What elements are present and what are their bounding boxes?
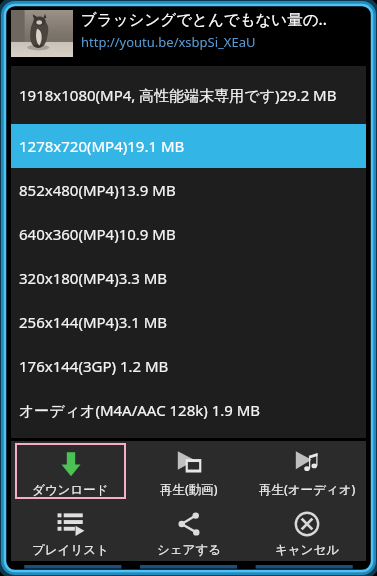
staticText: 640x360(MP4)10.9 MB [19, 224, 176, 244]
button[interactable]: 640x360(MP4)10.9 MB [11, 212, 366, 256]
button[interactable]: キャンセル [252, 503, 362, 559]
staticText: 256x144(MP4)3.1 MB [19, 312, 168, 332]
staticText: 1918x1080(MP4, 高性能端末専用です)29.2 MB [19, 85, 337, 105]
button[interactable]: 再生(オーディオ) [252, 443, 362, 499]
button[interactable]: 再生(動画) [134, 443, 244, 499]
button[interactable]: 320x180(MP4)3.3 MB [11, 256, 366, 300]
staticText: キャンセル [275, 542, 339, 558]
staticText: 176x144(3GP) 1.2 MB [19, 356, 169, 376]
staticText: ブラッシングでとんでもない量の.. [81, 8, 327, 29]
staticText: 再生(動画) [160, 481, 218, 498]
button[interactable]: 256x144(MP4)3.1 MB [11, 300, 366, 344]
staticText: 1278x720(MP4)19.1 MB [19, 136, 185, 156]
staticText: シェアする [157, 542, 221, 558]
button[interactable]: 852x480(MP4)13.9 MB [11, 168, 366, 212]
button[interactable]: オーディオ(M4A/AAC 128k) 1.9 MB [11, 388, 366, 432]
button[interactable]: プレイリスト [15, 503, 126, 559]
other: 再生(オーディオ) [293, 449, 321, 477]
button[interactable]: 1918x1080(MP4, 高性能端末専用です)29.2 MB [11, 66, 366, 124]
other: シェアする [175, 510, 203, 538]
staticText: 852x480(MP4)13.9 MB [19, 180, 176, 200]
other: 再生(動画) [175, 449, 203, 477]
other: プレイリスト [57, 510, 85, 538]
staticText: ダウンロード [32, 482, 109, 498]
button[interactable]: ダウンロード [15, 443, 126, 499]
button[interactable]: 1278x720(MP4)19.1 MB [11, 124, 366, 168]
staticText: http://youtu.be/xsbpSi_XEaU [81, 33, 256, 51]
other: キャンセル [293, 510, 321, 538]
button[interactable]: 176x144(3GP) 1.2 MB [11, 344, 366, 388]
other: ダウンロード [57, 450, 85, 478]
staticText: 320x180(MP4)3.3 MB [19, 268, 168, 288]
staticText: オーディオ(M4A/AAC 128k) 1.9 MB [19, 400, 261, 420]
staticText: プレイリスト [32, 542, 109, 558]
button[interactable]: シェアする [134, 503, 244, 559]
staticText: 再生(オーディオ) [259, 481, 356, 498]
